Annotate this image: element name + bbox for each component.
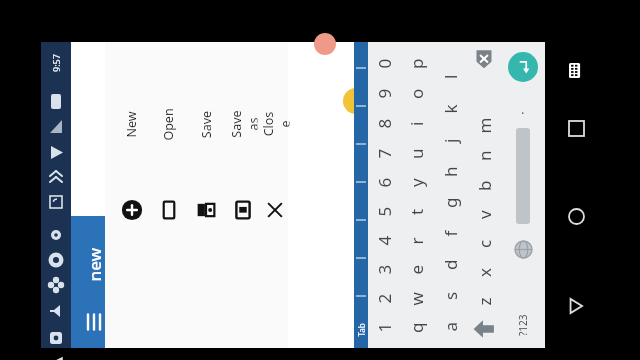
staticText: w bbox=[404, 291, 427, 305]
staticText: New bbox=[123, 111, 140, 138]
button[interactable]: 9 bbox=[368, 78, 399, 108]
staticText: Save bbox=[197, 110, 214, 138]
button[interactable]: x bbox=[467, 258, 501, 287]
staticText: x bbox=[473, 268, 496, 277]
button[interactable]: 4 bbox=[368, 226, 399, 255]
button[interactable]: 3 bbox=[368, 255, 399, 284]
button[interactable]: 5 bbox=[368, 197, 399, 226]
button[interactable]: k bbox=[433, 92, 467, 124]
staticText: y bbox=[405, 178, 428, 187]
button[interactable]: e bbox=[399, 255, 433, 284]
button[interactable]: n bbox=[467, 140, 501, 170]
button[interactable]: h bbox=[433, 156, 467, 187]
staticText: f bbox=[438, 230, 461, 236]
button[interactable]: m bbox=[467, 110, 501, 140]
button[interactable]: f bbox=[433, 218, 467, 249]
button[interactable]: 7 bbox=[368, 138, 399, 168]
staticText: k bbox=[438, 103, 461, 113]
button[interactable]: 1 bbox=[368, 313, 399, 342]
button[interactable]: c bbox=[467, 229, 501, 258]
staticText: 2 bbox=[372, 293, 395, 303]
staticText: z bbox=[472, 297, 495, 305]
staticText: b bbox=[473, 180, 496, 191]
staticText: Close bbox=[259, 110, 289, 137]
staticText: c bbox=[473, 239, 496, 248]
button[interactable]: p bbox=[399, 48, 433, 78]
staticText: g bbox=[439, 197, 462, 208]
button[interactable]: i bbox=[399, 108, 433, 138]
button[interactable]: q bbox=[399, 313, 433, 342]
staticText: Open bbox=[160, 108, 177, 141]
staticText: 7 bbox=[372, 148, 395, 158]
button[interactable]: Back bbox=[558, 288, 594, 324]
button[interactable]: Change keyboard language bbox=[512, 238, 534, 260]
button[interactable]: ?123 bbox=[510, 308, 536, 342]
staticText: d bbox=[439, 259, 462, 270]
button[interactable]: 2 bbox=[368, 284, 399, 313]
staticText: new bbox=[82, 247, 105, 281]
staticText: e bbox=[404, 264, 427, 274]
staticText: i bbox=[405, 121, 428, 126]
button[interactable]: r bbox=[399, 226, 433, 255]
staticText: h bbox=[439, 166, 462, 177]
button[interactable]: g bbox=[433, 187, 467, 218]
button[interactable]: Save as bbox=[224, 42, 261, 348]
staticText: 9:57 bbox=[50, 54, 62, 72]
button[interactable]: l bbox=[433, 60, 467, 92]
button[interactable]: 0 bbox=[368, 48, 399, 78]
staticText: s bbox=[439, 291, 462, 300]
button[interactable]: a bbox=[433, 311, 467, 342]
staticText: 9 bbox=[372, 88, 395, 98]
staticText: n bbox=[473, 150, 496, 161]
staticText: 8 bbox=[372, 118, 395, 128]
staticText: . bbox=[521, 100, 525, 118]
button[interactable]: d bbox=[433, 249, 467, 280]
staticText: m bbox=[472, 117, 495, 133]
staticText: ?123 bbox=[516, 314, 530, 336]
button[interactable]: Enter bbox=[508, 52, 538, 82]
staticText: q bbox=[405, 322, 428, 333]
button[interactable]: w bbox=[399, 284, 433, 313]
button[interactable]: s bbox=[433, 280, 467, 311]
button[interactable]: t bbox=[399, 197, 433, 226]
staticText: r bbox=[404, 236, 427, 244]
button[interactable]: Open bbox=[150, 42, 187, 348]
staticText: a bbox=[438, 321, 461, 331]
button[interactable]: Delete bbox=[473, 48, 495, 70]
staticText: p bbox=[405, 58, 428, 69]
staticText: o bbox=[405, 88, 428, 99]
button[interactable]: 6 bbox=[368, 168, 399, 197]
staticText: Save as bbox=[227, 105, 257, 142]
button[interactable]: z bbox=[467, 287, 501, 316]
button[interactable]: Hide keyboard bbox=[560, 54, 592, 86]
staticText: 4 bbox=[372, 235, 395, 245]
button[interactable]: 8 bbox=[368, 108, 399, 138]
staticText: l bbox=[439, 74, 462, 79]
button[interactable]: y bbox=[399, 168, 433, 197]
button[interactable]: Close bbox=[261, 42, 288, 348]
button[interactable]: Recent apps bbox=[558, 110, 594, 146]
button[interactable]: Save bbox=[187, 42, 224, 348]
staticText: t bbox=[405, 208, 428, 215]
staticText: 3 bbox=[372, 264, 395, 274]
button[interactable]: Shift bbox=[471, 316, 497, 342]
button[interactable]: Home bbox=[558, 198, 594, 234]
button[interactable]: Open navigation drawer bbox=[78, 306, 110, 338]
button[interactable]: j bbox=[433, 124, 467, 156]
staticText: 5 bbox=[372, 206, 395, 216]
button[interactable]: o bbox=[399, 78, 433, 108]
button[interactable]: b bbox=[467, 170, 501, 200]
staticText: 6 bbox=[372, 177, 395, 187]
staticText: v bbox=[473, 210, 496, 219]
staticText: 0 bbox=[372, 58, 395, 68]
staticText: u bbox=[405, 148, 428, 159]
staticText: j bbox=[439, 138, 462, 143]
staticText: 1 bbox=[372, 322, 395, 332]
button[interactable]: Tab bbox=[354, 314, 368, 344]
button[interactable]: v bbox=[467, 200, 501, 229]
staticText: Tab bbox=[355, 322, 366, 336]
button[interactable]: u bbox=[399, 138, 433, 168]
button[interactable]: New bbox=[113, 42, 150, 348]
